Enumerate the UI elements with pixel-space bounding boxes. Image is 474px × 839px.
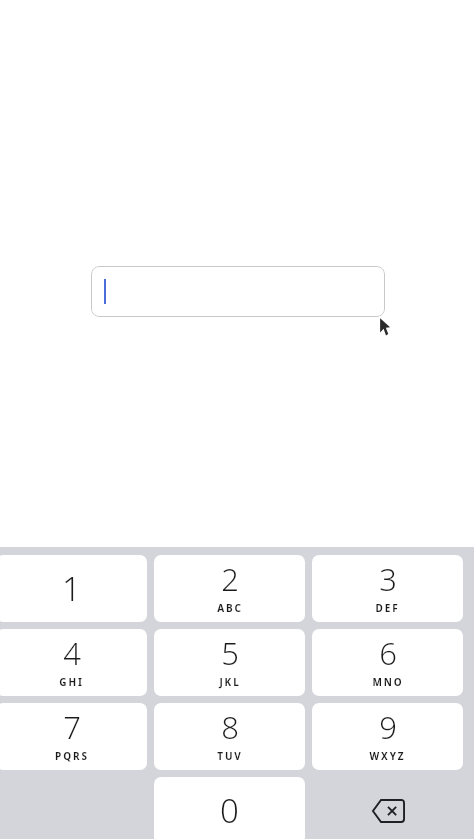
staticText: 4 bbox=[63, 632, 81, 674]
staticText: 2 bbox=[221, 558, 239, 600]
button[interactable]: 4 bbox=[0, 629, 147, 696]
staticText: 0 bbox=[220, 788, 239, 833]
button[interactable]: 3 bbox=[312, 555, 463, 622]
button[interactable]: 9 bbox=[312, 703, 463, 770]
staticText: 5 bbox=[221, 632, 239, 674]
staticText: GHI bbox=[59, 675, 84, 689]
button[interactable]: 6 bbox=[312, 629, 463, 696]
button[interactable]: 2 bbox=[154, 555, 305, 622]
staticText: ABC bbox=[217, 601, 243, 615]
staticText: 6 bbox=[379, 632, 397, 674]
staticText: 3 bbox=[379, 558, 397, 600]
staticText: MNO bbox=[372, 675, 404, 689]
staticText: 7 bbox=[63, 706, 81, 748]
button[interactable]: 1 bbox=[0, 555, 147, 622]
button[interactable]: 5 bbox=[154, 629, 305, 696]
button[interactable]: 0 bbox=[154, 777, 305, 839]
staticText: 1 bbox=[62, 566, 81, 611]
button[interactable]: 7 bbox=[0, 703, 147, 770]
staticText: WXYZ bbox=[369, 749, 406, 763]
staticText: TUV bbox=[217, 749, 243, 763]
staticText: 9 bbox=[379, 706, 397, 748]
staticText: PQRS bbox=[55, 749, 89, 763]
staticText: DEF bbox=[375, 601, 400, 615]
staticText: JKL bbox=[219, 675, 241, 689]
staticText: 8 bbox=[221, 706, 239, 748]
button[interactable]: Text input field bbox=[91, 266, 385, 317]
button[interactable]: 8 bbox=[154, 703, 305, 770]
button[interactable]: Backspace bbox=[312, 777, 463, 839]
